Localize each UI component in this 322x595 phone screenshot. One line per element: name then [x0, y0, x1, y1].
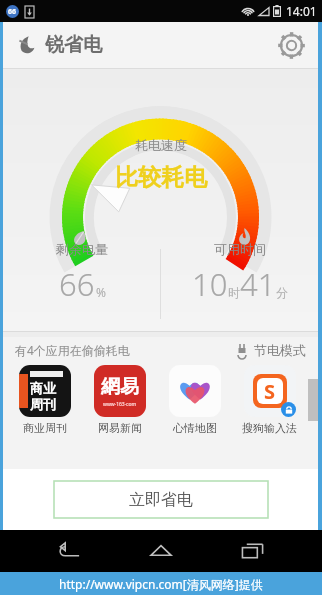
- staticText: 搜狗输入法: [242, 421, 297, 435]
- staticText: 66: [8, 7, 17, 17]
- button[interactable]: Recent apps: [231, 530, 275, 572]
- button[interactable]: S: [235, 365, 304, 435]
- button[interactable]: Back: [48, 530, 92, 572]
- button[interactable]: 节电模式: [236, 342, 306, 358]
- staticText: %: [96, 284, 106, 300]
- staticText: 41: [240, 263, 276, 305]
- staticText: 时: [228, 285, 240, 300]
- staticText: 网易新闻: [98, 421, 142, 435]
- staticText: 商业: [30, 380, 56, 396]
- staticText: S: [264, 378, 276, 404]
- staticText: 網易: [101, 375, 139, 399]
- staticText: 周刊: [30, 396, 56, 412]
- button[interactable]: 心情地图: [160, 365, 229, 435]
- staticText: 66: [59, 263, 95, 305]
- staticText: 立即省电: [129, 490, 193, 510]
- staticText: 剩余电量: [56, 241, 108, 257]
- staticText: 比较耗电: [115, 163, 207, 192]
- staticText: 有4个应用在偷偷耗电: [15, 342, 130, 358]
- staticText: www·163·com: [103, 401, 137, 408]
- button[interactable]: 立即省电: [54, 481, 268, 518]
- staticText: http://www.vipcn.com[清风网络]提供: [59, 576, 263, 592]
- button[interactable]: Home: [139, 530, 183, 572]
- staticText: 14:01: [286, 3, 317, 19]
- staticText: 锐省电: [45, 33, 102, 57]
- staticText: 商业周刊: [23, 421, 67, 435]
- staticText: 10: [192, 263, 228, 305]
- button[interactable]: Settings: [274, 28, 308, 62]
- button[interactable]: 商业: [11, 365, 79, 435]
- staticText: 心情地图: [173, 421, 217, 435]
- staticText: 耗电速度: [135, 137, 187, 153]
- button[interactable]: 網易: [85, 365, 154, 435]
- staticText: 节电模式: [254, 342, 306, 358]
- staticText: 可用时间: [214, 241, 266, 257]
- staticText: 分: [276, 285, 288, 300]
